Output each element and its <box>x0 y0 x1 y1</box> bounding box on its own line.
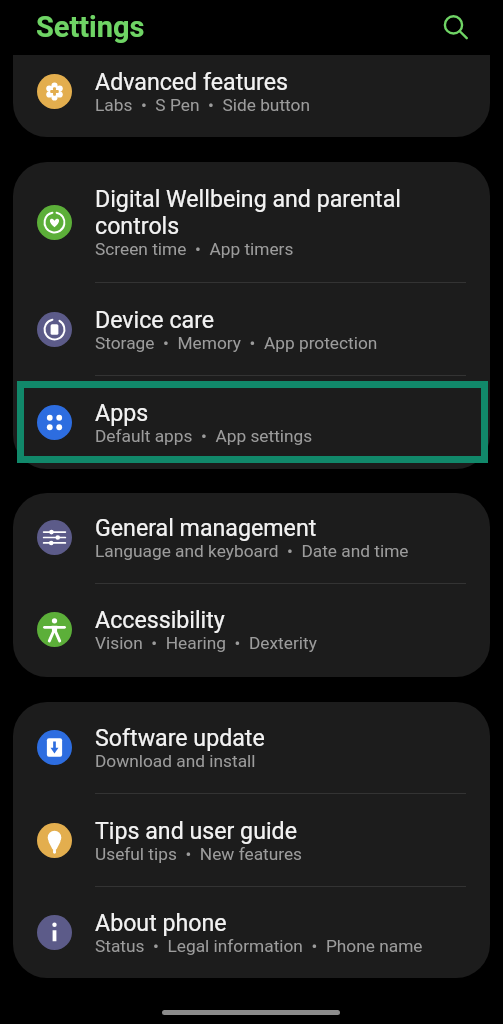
staticText: Storage • Memory • App protection <box>95 333 378 353</box>
staticText: General management <box>95 514 317 541</box>
button[interactable]: Apps <box>13 376 490 468</box>
button[interactable]: Accessibility <box>13 584 490 675</box>
button[interactable]: Software update <box>13 702 490 793</box>
staticText: Software update <box>95 724 265 751</box>
staticText: Labs • S Pen • Side button <box>95 95 310 115</box>
staticText: Settings <box>36 10 145 44</box>
staticText: Advanced features <box>95 68 288 95</box>
staticText: About phone <box>95 909 227 936</box>
staticText: Digital Wellbeing and parental <box>95 185 401 212</box>
staticText: Accessibility <box>95 606 225 633</box>
button[interactable]: Digital Wellbeing and parental <box>13 164 490 282</box>
staticText: Device care <box>95 306 215 333</box>
button[interactable]: General management <box>13 493 490 583</box>
button[interactable]: Device care <box>13 283 490 375</box>
button[interactable]: Tips and user guide <box>13 794 490 886</box>
staticText: Useful tips • New features <box>95 844 303 864</box>
button[interactable]: Search <box>433 5 479 51</box>
staticText: Apps <box>95 399 149 426</box>
button[interactable]: Advanced features <box>13 55 490 132</box>
staticText: controls <box>95 212 180 239</box>
staticText: Vision • Hearing • Dexterity <box>95 633 317 653</box>
button[interactable]: About phone <box>13 887 490 977</box>
staticText: Default apps • App settings <box>95 426 313 446</box>
staticText: Screen time • App timers <box>95 239 294 259</box>
staticText: Download and install <box>95 751 256 771</box>
staticText: Status • Legal information • Phone name <box>95 936 423 956</box>
staticText: Tips and user guide <box>95 817 297 844</box>
staticText: Language and keyboard • Date and time <box>95 541 409 561</box>
